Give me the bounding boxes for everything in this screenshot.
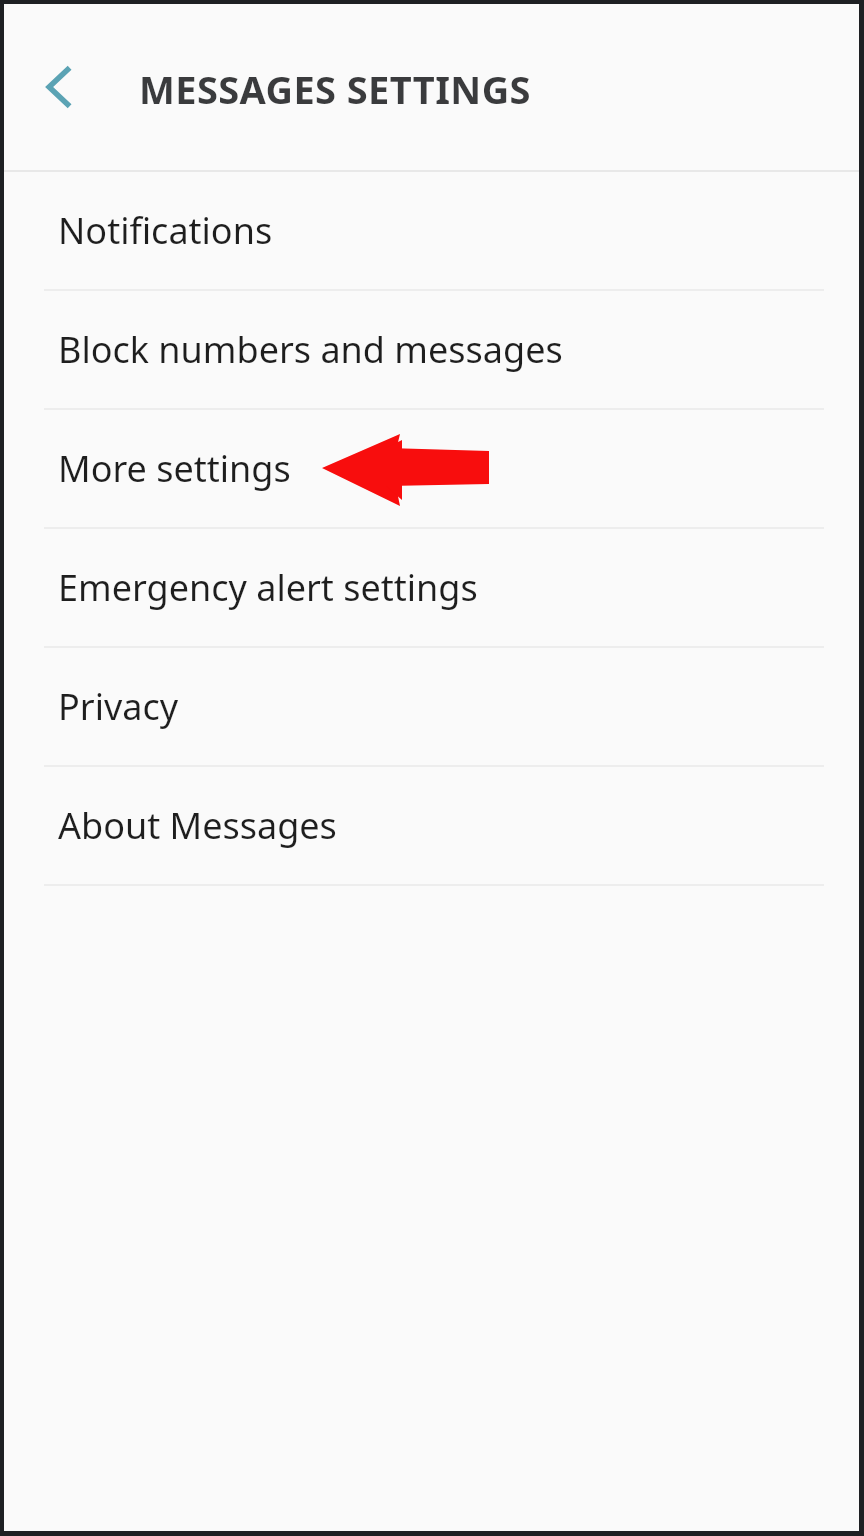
button[interactable]: About Messages xyxy=(4,767,859,886)
staticText: Emergency alert settings xyxy=(58,563,478,612)
button[interactable]: More settings xyxy=(4,410,859,529)
staticText: Block numbers and messages xyxy=(58,325,563,374)
button[interactable]: Notifications xyxy=(4,172,859,291)
staticText: Notifications xyxy=(58,206,273,255)
staticText: Privacy xyxy=(58,682,179,731)
button[interactable]: Back xyxy=(24,51,96,123)
staticText: MESSAGES SETTINGS xyxy=(139,63,531,115)
staticText: About Messages xyxy=(58,801,337,850)
button[interactable]: Emergency alert settings xyxy=(4,529,859,648)
staticText: More settings xyxy=(58,444,291,493)
button[interactable]: Block numbers and messages xyxy=(4,291,859,410)
button[interactable]: Privacy xyxy=(4,648,859,767)
